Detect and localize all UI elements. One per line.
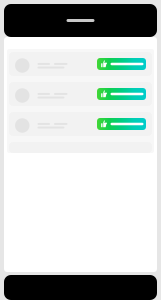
button[interactable] [9, 112, 152, 136]
button[interactable] [9, 52, 152, 76]
button[interactable] [9, 82, 152, 106]
